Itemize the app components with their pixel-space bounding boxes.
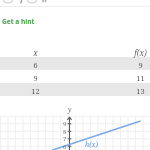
staticText: 11 [136, 73, 145, 83]
staticText: 6 [33, 60, 38, 70]
staticText: 9 [63, 120, 67, 128]
staticText: 12 [31, 86, 40, 96]
button[interactable]: Get a hint [2, 17, 35, 26]
staticText: h(x) [85, 140, 98, 150]
staticText: 6 [63, 143, 67, 150]
staticText: y [68, 105, 72, 114]
staticText: Get a hint [2, 17, 35, 26]
staticText: 9 [33, 73, 38, 83]
staticText: f(x) [134, 47, 147, 58]
staticText: 13 [136, 86, 145, 96]
button[interactable]: Answer choices [0, 0, 150, 6]
staticText: x [33, 47, 38, 58]
staticText: 7 [63, 135, 67, 143]
staticText: 9 [138, 60, 143, 70]
staticText: 8 [63, 128, 67, 136]
